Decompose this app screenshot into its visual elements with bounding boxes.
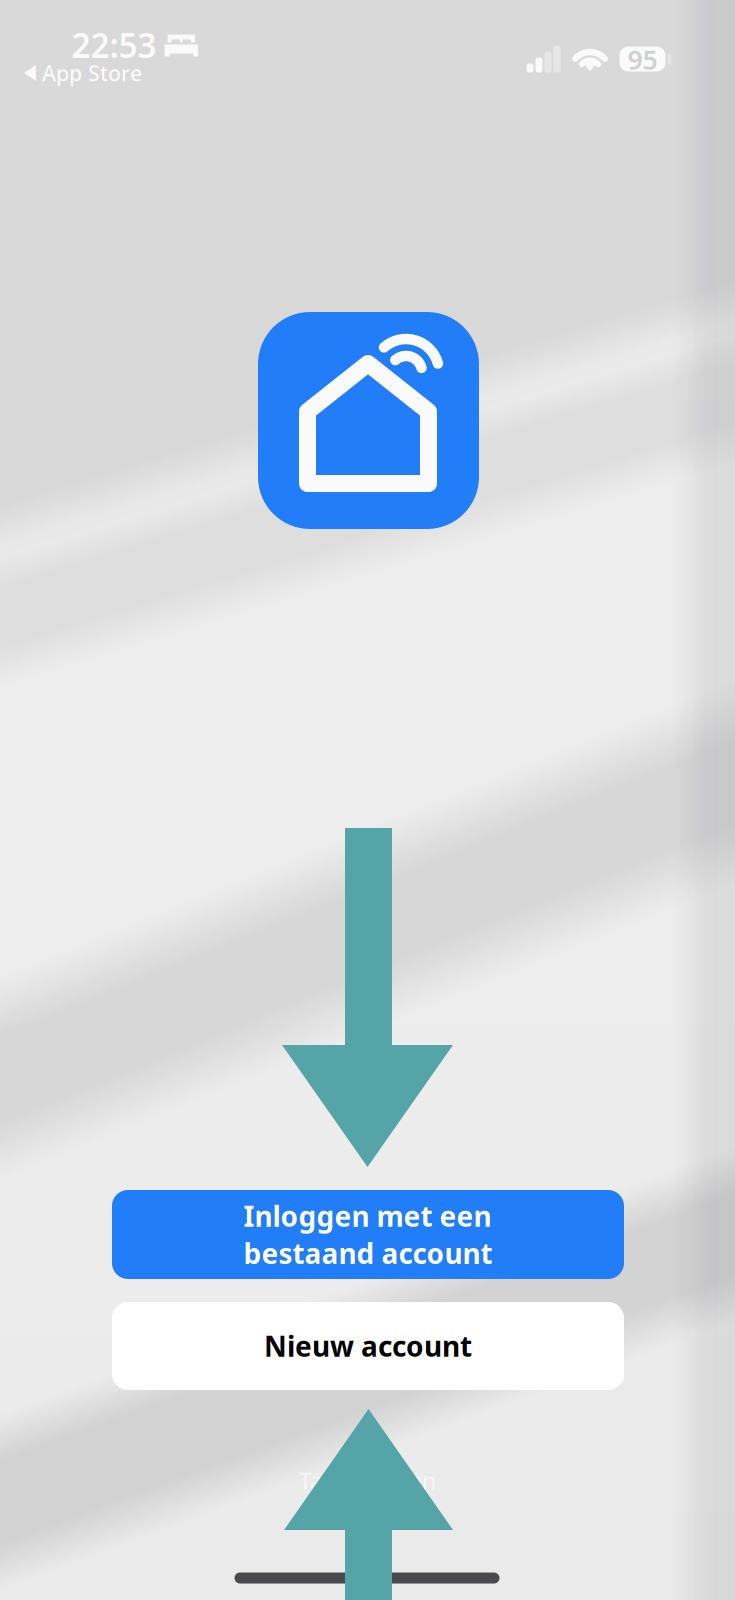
staticText: Taal wijzigen [299, 1466, 436, 1496]
staticText: 22:53 [71, 23, 156, 67]
staticText: Nieuw account [264, 1327, 472, 1365]
button[interactable]: Inloggen met een bestaand account [112, 1190, 624, 1279]
staticText: 95 [627, 42, 657, 77]
button[interactable]: Nieuw account [112, 1302, 624, 1390]
staticText: App Store [42, 59, 142, 87]
staticText: Inloggen met een bestaand account [243, 1197, 492, 1272]
